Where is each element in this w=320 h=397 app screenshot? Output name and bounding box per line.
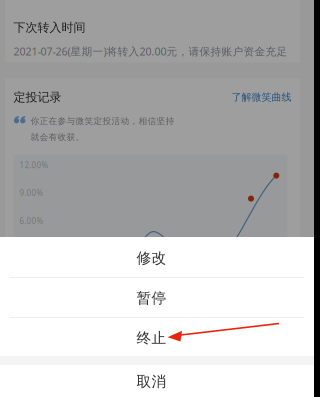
button[interactable]: 终止 — [0, 318, 303, 358]
staticText: 9.00% — [19, 187, 43, 198]
staticText: 6.00% — [19, 215, 43, 226]
button[interactable]: 修改 — [0, 238, 303, 278]
staticText: 修改 — [136, 249, 166, 267]
button[interactable]: 取消 — [0, 365, 303, 397]
staticText: 暂停 — [136, 289, 166, 307]
staticText: 了解微笑曲线 — [231, 91, 291, 103]
staticText: 终止 — [136, 329, 166, 347]
staticText: 就会有收获。 — [30, 132, 84, 143]
button[interactable]: 暂停 — [0, 278, 303, 318]
staticText: 取消 — [136, 372, 166, 391]
staticText: 下次转入时间 — [13, 20, 85, 35]
staticText: 定投记录 — [13, 90, 61, 105]
staticText: 2021-07-26(星期一)将转入20.00元，请保持账户资金充足 — [13, 44, 287, 59]
button[interactable]: 了解微笑曲线 — [231, 91, 291, 103]
staticText: 你正在参与微笑定投活动，相信坚持 — [30, 116, 174, 127]
staticText: 12.00% — [19, 160, 48, 170]
